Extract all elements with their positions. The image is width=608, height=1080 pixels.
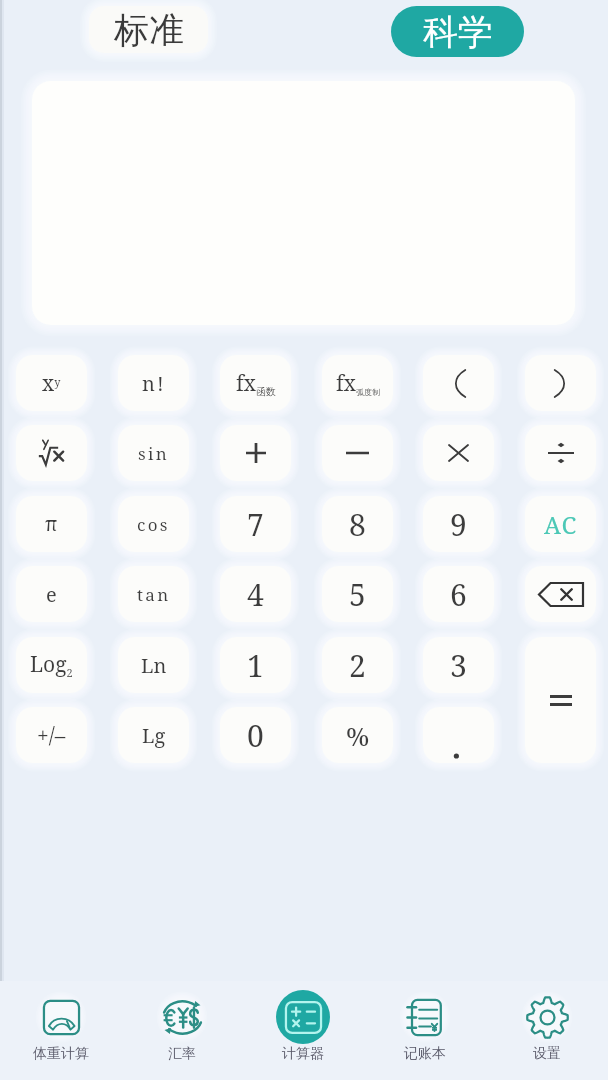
button[interactable]: sin [118, 425, 189, 481]
staticText: sin [138, 442, 169, 465]
button[interactable]: 科学 [391, 6, 524, 57]
button[interactable]: Ln [118, 637, 189, 693]
button[interactable]: Decimal point [423, 707, 494, 763]
staticText: xy [42, 369, 61, 398]
button[interactable]: 2 [322, 637, 393, 693]
staticText: 6 [450, 574, 467, 615]
button[interactable]: xy [16, 355, 87, 411]
staticText: 0 [247, 715, 264, 756]
staticText: 记账本 [404, 1045, 446, 1063]
button[interactable]: fx弧度制 [322, 355, 393, 411]
staticText: +/– [37, 721, 66, 750]
button[interactable]: 5 [322, 566, 393, 622]
staticText: 计算器 [282, 1045, 324, 1063]
button[interactable]: 汇率 [121, 990, 242, 1063]
staticText: e [46, 581, 57, 608]
button[interactable]: Multiply [423, 425, 494, 481]
button[interactable]: 标准 [89, 6, 208, 53]
staticText: AC [544, 508, 578, 541]
button[interactable]: Divide [525, 425, 596, 481]
button[interactable]: 计算器 [242, 990, 364, 1063]
staticText: 9 [450, 504, 467, 545]
button[interactable]: 体重计算 [0, 990, 121, 1063]
staticText: 体重计算 [33, 1045, 89, 1063]
staticText: Lg [142, 722, 166, 749]
staticText: 科学 [423, 10, 493, 54]
button[interactable]: Equals [525, 637, 596, 763]
staticText: 汇率 [168, 1045, 196, 1063]
button[interactable]: n! [118, 355, 189, 411]
button[interactable]: Minus [322, 425, 393, 481]
button[interactable]: 9 [423, 496, 494, 552]
button[interactable]: Lg [118, 707, 189, 763]
staticText: fx弧度制 [336, 369, 380, 398]
button[interactable]: tan [118, 566, 189, 622]
staticText: 8 [349, 504, 366, 545]
button[interactable]: 7 [220, 496, 291, 552]
button[interactable]: y-th root of x [16, 425, 87, 481]
staticText: π [45, 511, 58, 537]
button[interactable]: Plus [220, 425, 291, 481]
staticText: 1 [247, 645, 264, 686]
button[interactable]: Backspace [525, 566, 596, 622]
staticText: % [346, 718, 370, 753]
staticText: 2 [349, 645, 366, 686]
button[interactable]: 4 [220, 566, 291, 622]
button[interactable]: Open parenthesis [423, 355, 494, 411]
button[interactable]: 0 [220, 707, 291, 763]
staticText: 5 [349, 574, 366, 615]
staticText: 4 [247, 574, 264, 615]
staticText: 设置 [533, 1045, 561, 1063]
button[interactable]: 1 [220, 637, 291, 693]
staticText: tan [137, 583, 171, 606]
button[interactable]: 3 [423, 637, 494, 693]
button[interactable]: % [322, 707, 393, 763]
button[interactable]: π [16, 496, 87, 552]
button[interactable]: 记账本 [364, 990, 486, 1063]
button[interactable]: AC [525, 496, 596, 552]
staticText: cos [137, 513, 170, 536]
staticText: 7 [247, 504, 264, 545]
staticText: Log2 [30, 650, 73, 680]
button[interactable]: Log2 [16, 637, 87, 693]
button[interactable]: e [16, 566, 87, 622]
button[interactable]: Close parenthesis [525, 355, 596, 411]
staticText: n! [142, 370, 166, 397]
staticText: Ln [141, 652, 167, 679]
button[interactable]: 设置 [486, 990, 608, 1063]
staticText: 3 [450, 645, 467, 686]
staticText: 标准 [114, 8, 184, 52]
button[interactable]: cos [118, 496, 189, 552]
button[interactable]: 6 [423, 566, 494, 622]
button[interactable]: fx函数 [220, 355, 291, 411]
button[interactable]: 8 [322, 496, 393, 552]
staticText: fx函数 [236, 369, 276, 398]
button[interactable]: +/– [16, 707, 87, 763]
